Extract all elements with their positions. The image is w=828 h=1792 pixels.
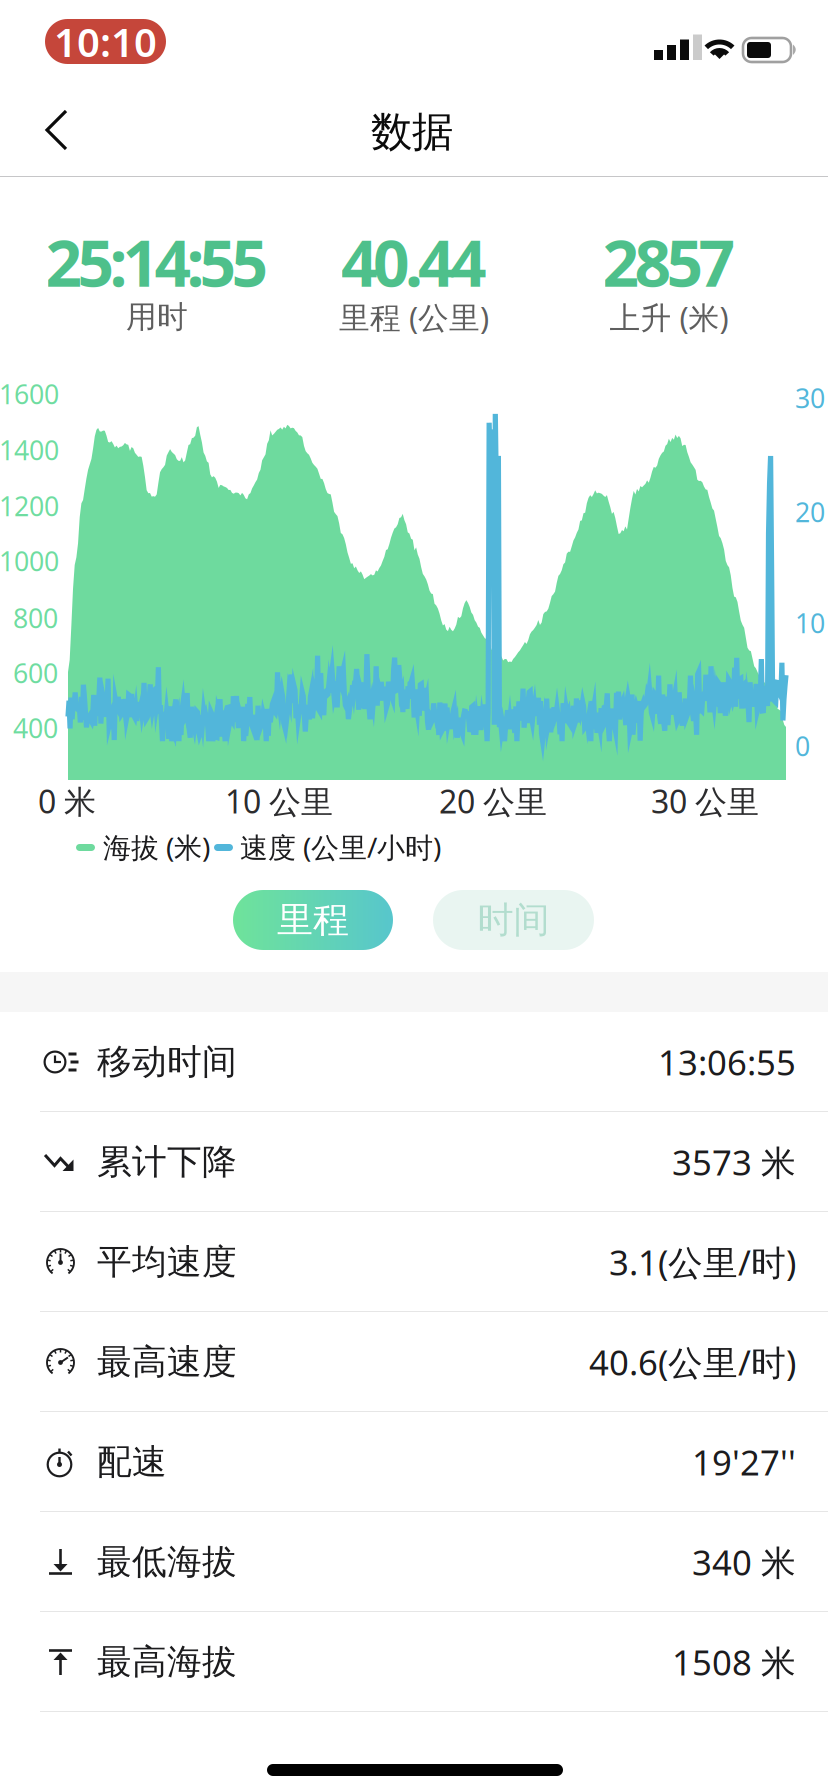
staticText: 13:06:55 [658, 1039, 796, 1085]
staticText: 3.1(公里/时) [609, 1239, 796, 1285]
staticText: 340 米 [692, 1539, 796, 1585]
staticText: 800 [13, 600, 58, 636]
staticText: 1000 [0, 543, 59, 579]
staticText: 海拔 (米) [103, 828, 210, 866]
staticText: 600 [13, 655, 58, 691]
staticText: 1400 [0, 432, 59, 468]
button[interactable]: 累计下降 [0, 1112, 828, 1212]
staticText: 20 [795, 494, 825, 530]
staticText: 30 [795, 380, 825, 416]
button[interactable]: Back [4, 99, 108, 171]
button[interactable]: 最高海拔 [0, 1612, 828, 1712]
staticText: 平均速度 [97, 1241, 237, 1283]
staticText: 里程 (公里) [339, 297, 489, 337]
staticText: 1600 [0, 376, 59, 412]
button[interactable]: 最低海拔 [0, 1512, 828, 1612]
staticText: 1200 [0, 488, 59, 524]
staticText: 累计下降 [97, 1141, 237, 1183]
staticText: 里程 [277, 898, 349, 942]
staticText: 3573 米 [672, 1139, 796, 1185]
staticText: 40.44 [341, 219, 487, 304]
staticText: 最高海拔 [97, 1641, 237, 1683]
staticText: 0 [795, 728, 810, 764]
button[interactable]: 配速 [0, 1412, 828, 1512]
staticText: 上升 (米) [609, 297, 728, 337]
staticText: 0 米 [38, 780, 96, 822]
staticText: 400 [13, 710, 58, 746]
staticText: 配速 [97, 1441, 167, 1483]
button[interactable]: 时间 [433, 890, 594, 950]
staticText: 1508 米 [672, 1639, 796, 1685]
button[interactable]: 最高速度 [0, 1312, 828, 1412]
staticText: 25:14:55 [45, 219, 268, 304]
staticText: 最低海拔 [97, 1541, 237, 1583]
staticText: 2857 [602, 219, 735, 304]
staticText: 数据 [371, 107, 453, 157]
staticText: 移动时间 [97, 1041, 237, 1083]
staticText: 30 公里 [651, 780, 759, 822]
staticText: 40.6(公里/时) [589, 1339, 796, 1385]
button[interactable]: 移动时间 [0, 1012, 828, 1112]
staticText: 时间 [477, 898, 549, 942]
staticText: 10:10 [54, 15, 157, 68]
staticText: 速度 (公里/小时) [240, 828, 441, 866]
button[interactable]: 平均速度 [0, 1212, 828, 1312]
staticText: 10 [795, 605, 825, 641]
staticText: 最高速度 [97, 1341, 237, 1383]
staticText: 20 公里 [439, 780, 547, 822]
staticText: 10 公里 [225, 780, 333, 822]
staticText: 19'27'' [692, 1439, 796, 1485]
staticText: 用时 [126, 298, 188, 336]
button[interactable]: 里程 [233, 890, 393, 950]
